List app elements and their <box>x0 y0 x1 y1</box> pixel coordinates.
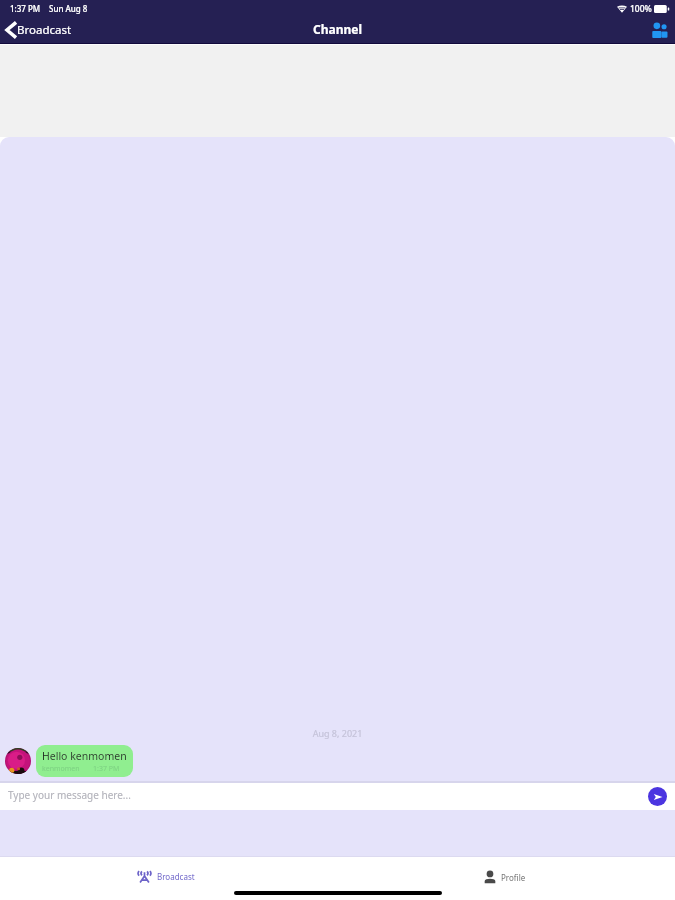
button[interactable]: Profile <box>337 870 675 884</box>
staticText: Aug 8, 2021 <box>0 727 675 739</box>
staticText: 1:37 PM <box>93 764 120 774</box>
staticText: Broadcast <box>17 22 72 38</box>
staticText: Sun Aug 8 <box>49 3 88 14</box>
staticText: Broadcast <box>157 871 195 882</box>
staticText: Profile <box>501 872 526 883</box>
staticText: Hello kenmomen <box>42 749 127 763</box>
staticText: Channel <box>313 21 363 37</box>
staticText: 1:37 PM <box>10 3 41 14</box>
staticText: 100% <box>630 3 652 15</box>
button[interactable]: Type your message here... <box>0 783 675 810</box>
button[interactable]: Broadcast <box>0 22 80 38</box>
staticText: Type your message here... <box>8 788 131 802</box>
button[interactable]: Members <box>647 18 671 42</box>
button[interactable]: Send <box>648 787 667 806</box>
button[interactable]: Broadcast <box>0 870 337 883</box>
staticText: kenmomen <box>42 764 80 774</box>
